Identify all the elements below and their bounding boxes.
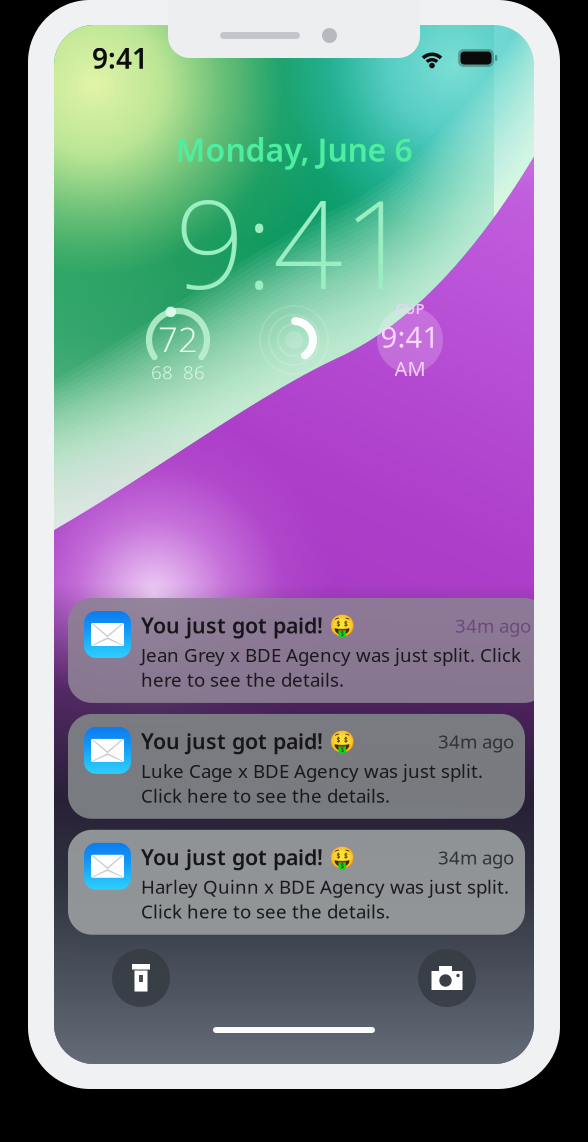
staticText: Jean Grey x BDE Agency was just split. C… xyxy=(141,642,521,692)
button[interactable]: You just got paid! 🤑 xyxy=(68,830,525,935)
staticText: Harley Quinn x BDE Agency was just split… xyxy=(141,874,509,924)
staticText: You just got paid! 🤑 xyxy=(141,611,356,639)
staticText: 9:41 xyxy=(92,39,148,77)
staticText: 9:41 xyxy=(380,317,439,356)
button[interactable]: Camera xyxy=(418,949,476,1007)
staticText: Monday, June 6 xyxy=(175,128,412,170)
staticText: 34m ago xyxy=(455,613,531,638)
staticText: 9:41 xyxy=(175,160,413,323)
button[interactable]: You just got paid! 🤑 xyxy=(68,598,548,703)
staticText: 34m ago xyxy=(438,729,514,754)
staticText: 68 86 xyxy=(151,360,205,384)
staticText: 72 xyxy=(158,316,198,362)
staticText: 34m ago xyxy=(438,845,514,870)
button[interactable]: Flashlight xyxy=(112,949,170,1007)
staticText: Luke Cage x BDE Agency was just split. C… xyxy=(141,758,483,808)
staticText: You just got paid! 🤑 xyxy=(141,843,356,871)
staticText: You just got paid! 🤑 xyxy=(141,727,356,755)
button[interactable]: You just got paid! 🤑 xyxy=(68,714,525,819)
staticText: AM xyxy=(394,355,425,381)
staticText: CUP xyxy=(395,298,424,318)
